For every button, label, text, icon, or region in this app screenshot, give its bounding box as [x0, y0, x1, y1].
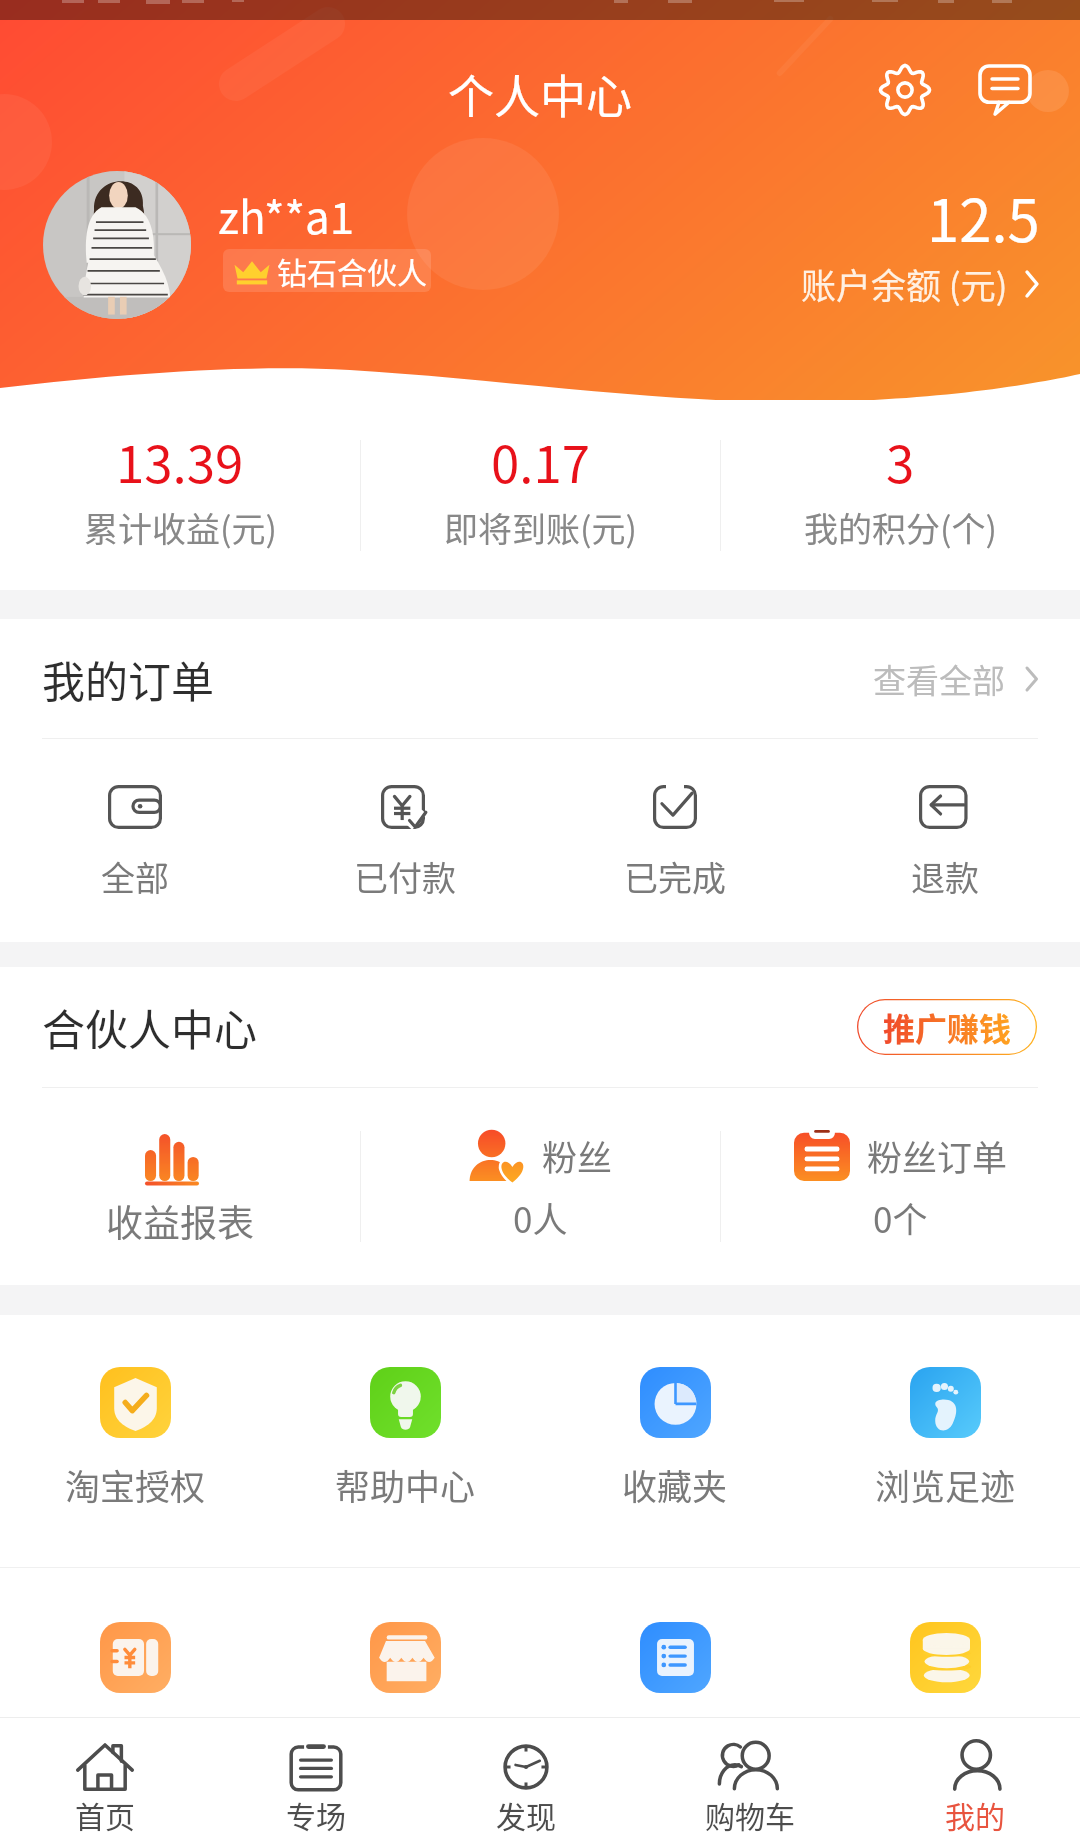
button[interactable]: 0.17: [361, 400, 720, 590]
button[interactable]: 我的金币: [810, 1568, 1080, 1820]
staticText: 钻石合伙人: [277, 249, 427, 292]
button[interactable]: 发现: [495, 1718, 557, 1840]
staticText: 已付款: [354, 852, 456, 901]
staticText: 淘宝授权: [65, 1459, 206, 1510]
staticText: 帮助中心: [335, 1459, 476, 1510]
button[interactable]: 已付款: [270, 739, 540, 942]
staticText: 粉丝: [542, 1130, 613, 1181]
staticText: 收藏夹: [622, 1459, 728, 1510]
staticText: 即将到账(元): [444, 503, 637, 552]
button[interactable]: 查看全部: [873, 655, 1040, 703]
button[interactable]: 淘宝授权: [0, 1315, 270, 1567]
staticText: 查看全部: [873, 655, 1005, 703]
button[interactable]: 粉丝订单: [721, 1088, 1080, 1285]
button[interactable]: 账户余额 (元): [801, 258, 1040, 309]
staticText: 个人中心: [448, 60, 632, 127]
staticText: 13.39: [116, 424, 244, 498]
staticText: 3: [886, 424, 915, 498]
staticText: 我的积分(个): [804, 503, 997, 552]
button[interactable]: 商品清单: [540, 1568, 810, 1820]
staticText: 0.17: [491, 424, 591, 498]
staticText: 合伙人中心: [42, 996, 257, 1058]
staticText: 购物车: [705, 1793, 795, 1836]
staticText: 推广赚钱: [883, 1004, 1012, 1050]
staticText: 全部: [101, 852, 169, 901]
button[interactable]: 退款: [810, 739, 1080, 942]
button[interactable]: 收益报表: [0, 1088, 360, 1285]
button[interactable]: 设置: [869, 54, 941, 126]
button[interactable]: 我的店铺: [270, 1568, 540, 1820]
button[interactable]: 粉丝: [361, 1088, 720, 1285]
button[interactable]: 收藏夹: [540, 1315, 810, 1567]
staticText: 我的订单: [42, 648, 214, 710]
button[interactable]: 13.39: [0, 400, 360, 590]
staticText: 0人: [513, 1192, 568, 1243]
button[interactable]: 我的: [944, 1718, 1006, 1840]
staticText: 发现: [496, 1793, 556, 1836]
button[interactable]: 头像: [43, 171, 191, 319]
button[interactable]: 我的账单: [0, 1568, 270, 1820]
button[interactable]: 专场: [285, 1718, 347, 1840]
button[interactable]: 推广赚钱: [857, 999, 1037, 1055]
button[interactable]: 首页: [74, 1718, 136, 1840]
staticText: 退款: [911, 852, 979, 901]
button[interactable]: 购物车: [705, 1718, 795, 1840]
button[interactable]: 浏览足迹: [810, 1315, 1080, 1567]
button[interactable]: 全部: [0, 739, 270, 942]
staticText: 我的: [945, 1793, 1005, 1836]
staticText: 浏览足迹: [875, 1459, 1016, 1510]
button[interactable]: 钻石合伙人: [223, 249, 431, 292]
staticText: 账户余额 (元): [801, 258, 1008, 309]
staticText: 粉丝订单: [867, 1130, 1008, 1181]
staticText: zh**a1: [218, 183, 355, 247]
staticText: 已完成: [624, 852, 726, 901]
button[interactable]: 3: [721, 400, 1080, 590]
button[interactable]: 帮助中心: [270, 1315, 540, 1567]
staticText: 收益报表: [106, 1194, 254, 1248]
staticText: 专场: [286, 1793, 346, 1836]
staticText: 0个: [873, 1192, 928, 1243]
button[interactable]: 12.5: [927, 175, 1040, 259]
button[interactable]: 消息: [969, 53, 1041, 125]
staticText: 首页: [75, 1793, 135, 1836]
button[interactable]: 已完成: [540, 739, 810, 942]
staticText: 累计收益(元): [84, 503, 277, 552]
